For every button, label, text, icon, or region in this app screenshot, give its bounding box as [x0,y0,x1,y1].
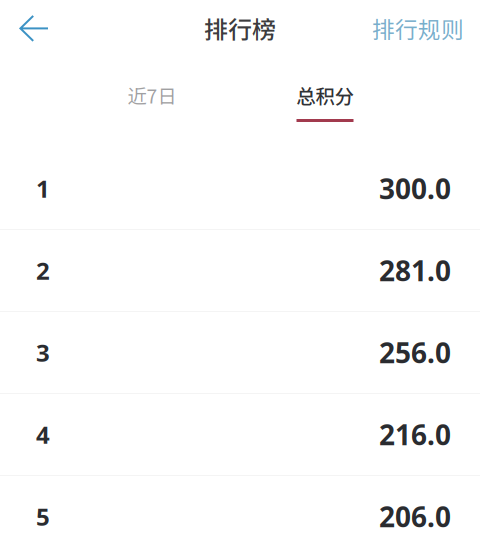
staticText: 4 [36,419,50,450]
staticText: 1 [36,173,50,204]
button[interactable]: 3 [0,312,480,394]
staticText: 256.0 [379,334,451,371]
staticText: 3 [36,337,50,368]
staticText: 216.0 [379,416,451,453]
staticText: 近7日 [127,81,176,109]
button[interactable]: 2 [0,230,480,312]
button[interactable]: 4 [0,394,480,476]
staticText: 2 [36,255,50,286]
staticText: 300.0 [379,170,451,207]
button[interactable]: 5 [0,476,480,548]
button[interactable]: 总积分 [270,84,380,122]
staticText: 排行规则 [372,12,464,44]
staticText: 281.0 [379,252,451,289]
staticText: 排行榜 [204,11,276,45]
button[interactable]: 1 [0,148,480,230]
button[interactable]: 近7日 [97,84,207,122]
staticText: 206.0 [379,498,451,535]
button[interactable]: 返回 [0,0,63,56]
button[interactable]: 排行规则 [358,0,480,56]
staticText: 5 [36,501,50,532]
staticText: 总积分 [296,81,353,109]
